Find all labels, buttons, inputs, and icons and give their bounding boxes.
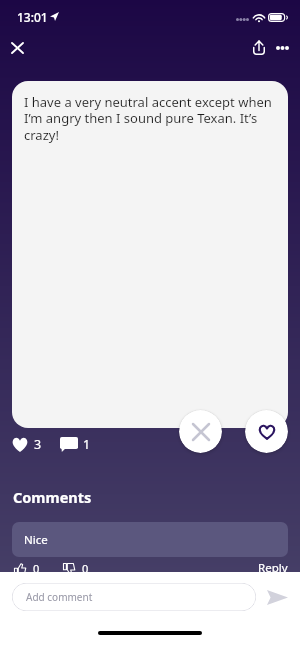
button[interactable]: 3 (12, 435, 42, 454)
staticText: Comments (13, 487, 92, 507)
button[interactable]: Close (1, 31, 34, 64)
button[interactable]: 0 (63, 561, 89, 576)
button[interactable]: Nice (12, 522, 288, 557)
button[interactable]: 1 (60, 435, 91, 454)
button[interactable]: Add comment (12, 583, 256, 611)
staticText: 1 (83, 436, 91, 453)
button[interactable]: 0 (14, 561, 40, 576)
staticText: 0 (33, 561, 40, 576)
staticText: Add comment (26, 590, 93, 604)
button[interactable]: Reply (258, 560, 288, 576)
button[interactable]: Like (245, 410, 288, 453)
staticText: 3 (34, 436, 42, 453)
staticText: 0 (82, 561, 89, 576)
button[interactable]: Share (242, 31, 275, 64)
button[interactable]: Dismiss (179, 410, 222, 453)
staticText: I have a very neutral accent except when… (24, 93, 281, 144)
staticText: Nice (24, 532, 48, 548)
button[interactable]: Send (262, 582, 292, 612)
staticText: 13:01 (17, 9, 48, 25)
button[interactable]: More options (266, 31, 299, 64)
